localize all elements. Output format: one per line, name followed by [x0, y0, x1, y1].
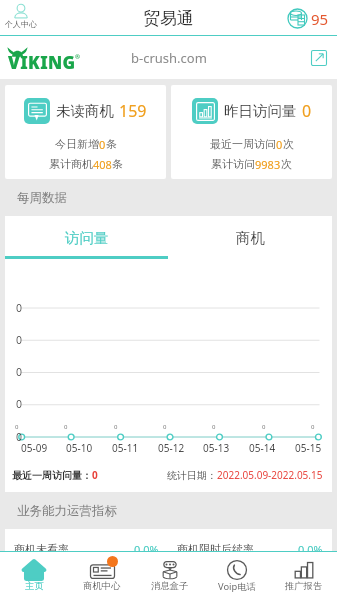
- staticText: 商机: [236, 229, 265, 247]
- button[interactable]: 商机: [168, 216, 332, 259]
- staticText: ®: [75, 53, 80, 61]
- staticText: 今日新增: [55, 137, 99, 151]
- staticText: 0: [15, 423, 19, 431]
- staticText: 访问量: [65, 229, 109, 247]
- staticText: 05-11: [112, 441, 139, 455]
- staticText: 次: [283, 137, 294, 151]
- button[interactable]: 未读商机: [5, 85, 166, 179]
- button[interactable]: 消息盒子: [136, 552, 203, 600]
- staticText: 消息盒子: [151, 580, 189, 592]
- button[interactable]: 商机未看率: [14, 542, 159, 551]
- button[interactable]: 商机限时后续率: [177, 542, 323, 551]
- staticText: 159: [119, 100, 147, 122]
- staticText: 次: [281, 157, 292, 171]
- staticText: 统计日期：: [167, 469, 217, 482]
- button[interactable]: Voip电话: [203, 552, 270, 600]
- staticText: 商机限时后续率: [177, 542, 254, 551]
- staticText: 0: [276, 137, 283, 152]
- staticText: 0: [302, 100, 312, 122]
- staticText: 0: [212, 423, 216, 431]
- staticText: 条: [106, 137, 117, 151]
- staticText: 05-13: [203, 441, 230, 455]
- staticText: 0: [64, 423, 68, 431]
- staticText: 0: [16, 430, 23, 444]
- staticText: VIKING: [8, 51, 76, 74]
- button[interactable]: 访问量: [5, 216, 168, 259]
- staticText: 0: [311, 423, 315, 431]
- staticText: 最近一周访问: [210, 137, 276, 151]
- staticText: 0.0%: [134, 542, 159, 551]
- staticText: 0: [99, 137, 106, 152]
- button[interactable]: 商机中心: [68, 552, 136, 600]
- staticText: 贸易通: [143, 8, 194, 29]
- staticText: 05-09: [21, 441, 48, 455]
- staticText: 0: [16, 333, 23, 347]
- staticText: 0: [114, 423, 118, 431]
- staticText: 商机未看率: [14, 542, 69, 551]
- staticText: 业务能力运营指标: [17, 503, 117, 519]
- staticText: 95: [311, 9, 329, 29]
- staticText: 05-14: [249, 441, 276, 455]
- staticText: 未读商机: [56, 102, 114, 120]
- staticText: b-crush.com: [131, 49, 207, 67]
- staticText: 0: [92, 468, 98, 482]
- staticText: 累计访问: [211, 157, 255, 171]
- staticText: 个人中心: [5, 19, 37, 29]
- button[interactable]: 个人中心: [5, 4, 37, 30]
- staticText: 408: [93, 157, 112, 172]
- staticText: 0: [16, 397, 23, 411]
- staticText: 9983: [255, 157, 281, 172]
- staticText: 0: [163, 423, 167, 431]
- button[interactable]: 推广报告: [270, 552, 337, 600]
- button[interactable]: 在浏览器打开: [310, 49, 328, 67]
- staticText: 0: [16, 365, 23, 379]
- staticText: 每周数据: [17, 190, 67, 206]
- staticText: 累计商机: [49, 157, 93, 171]
- staticText: 条: [112, 157, 123, 171]
- staticText: 05-15: [295, 441, 322, 455]
- other: 积分: [287, 8, 308, 29]
- staticText: 最近一周访问量：: [12, 469, 92, 482]
- staticText: 0.0%: [298, 542, 323, 551]
- staticText: 推广报告: [285, 580, 323, 592]
- button[interactable]: 积分: [287, 8, 329, 29]
- button[interactable]: 主页: [0, 552, 68, 600]
- staticText: Voip电话: [218, 580, 256, 593]
- staticText: 05-12: [158, 441, 185, 455]
- button[interactable]: 昨日访问量: [171, 85, 332, 179]
- staticText: 2022.05.09-2022.05.15: [217, 468, 323, 482]
- staticText: 0: [262, 423, 266, 431]
- staticText: 主页: [25, 580, 44, 592]
- staticText: 商机中心: [83, 580, 121, 592]
- staticText: 05-10: [66, 441, 93, 455]
- staticText: 0: [16, 301, 23, 315]
- staticText: 昨日访问量: [224, 102, 297, 120]
